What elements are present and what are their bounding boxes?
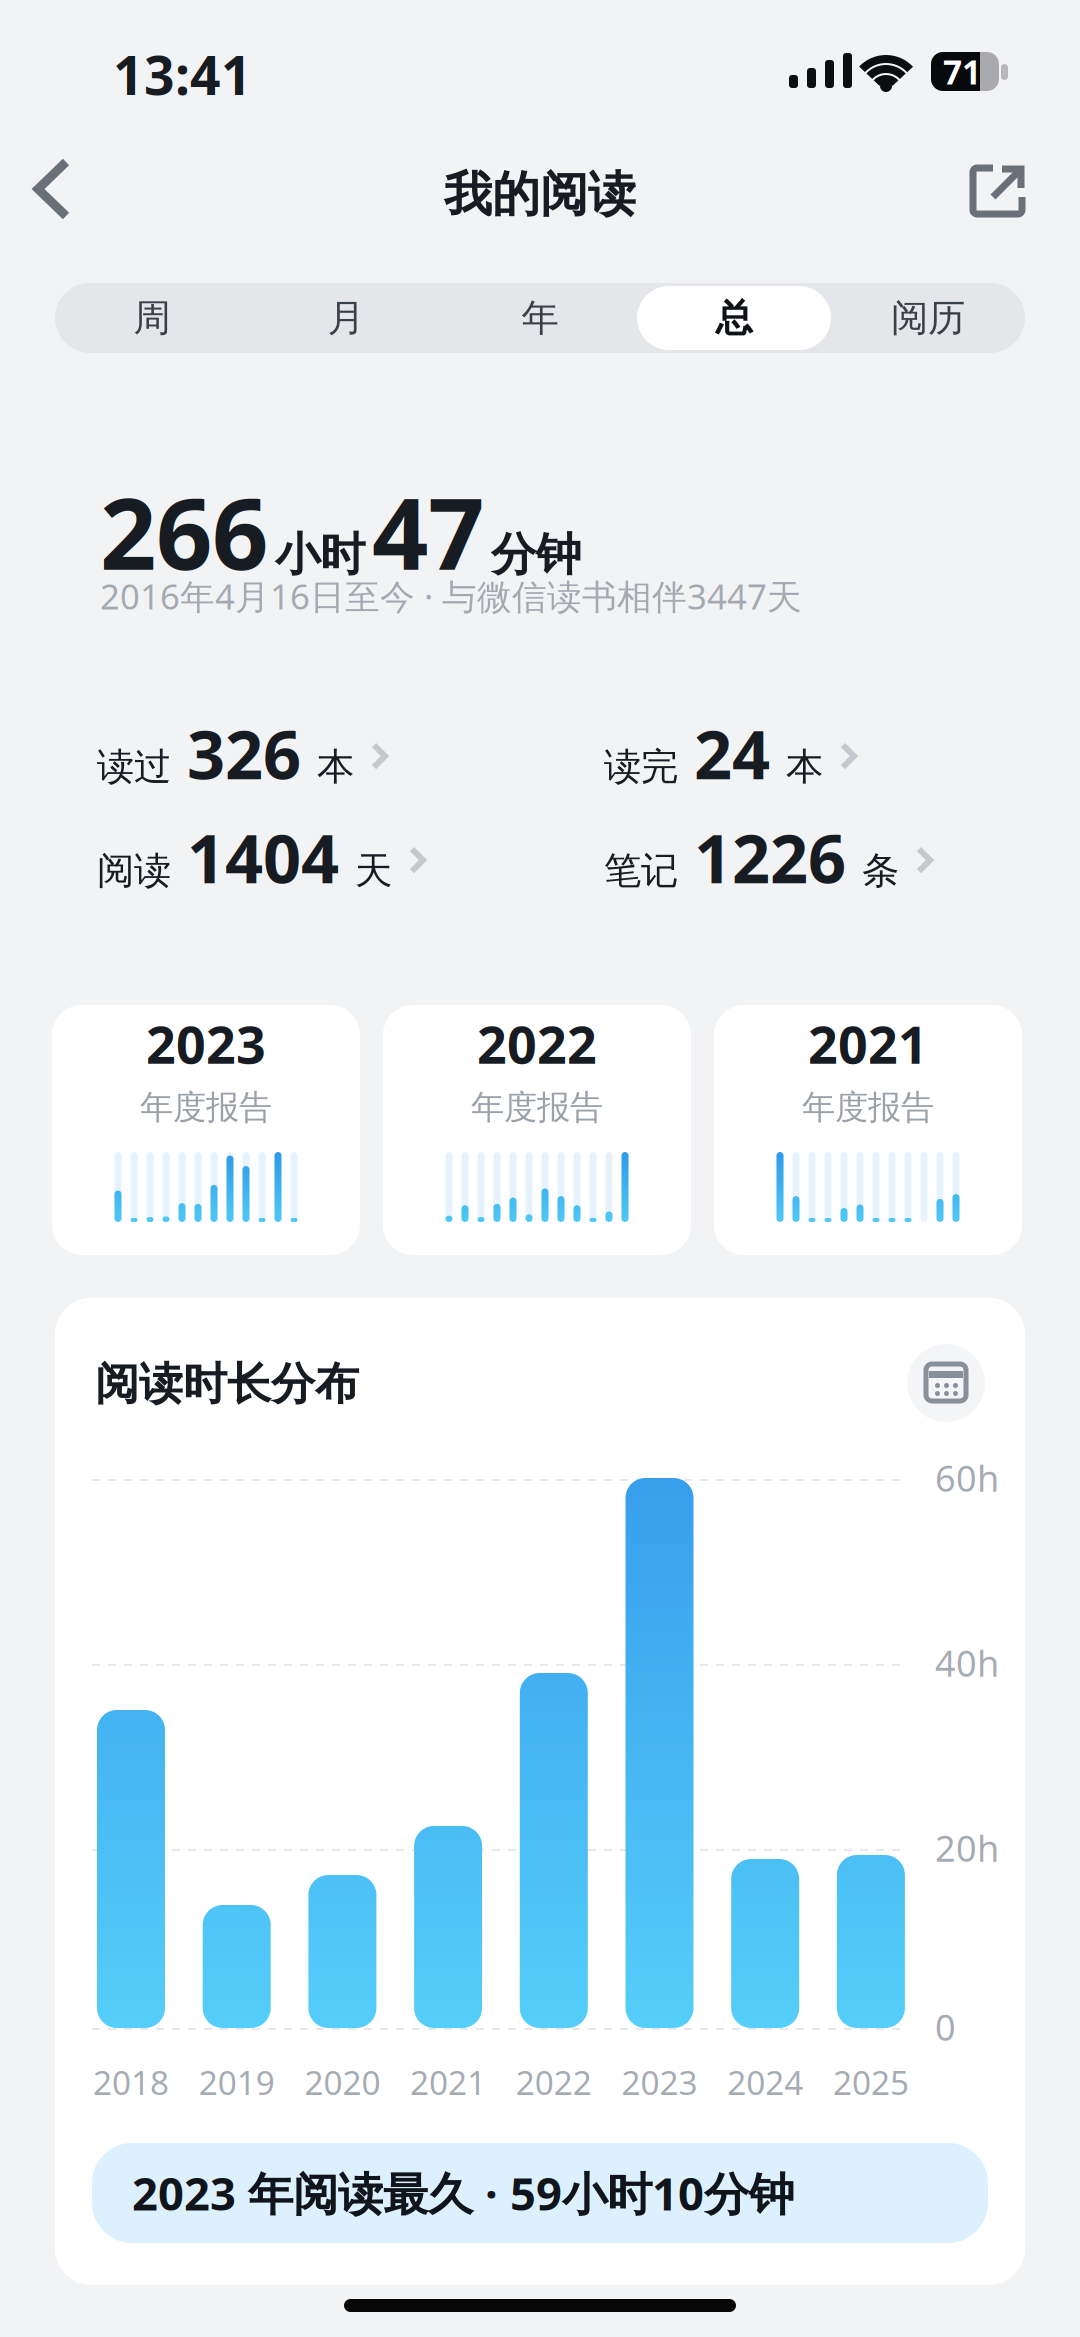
staticText: 2025	[833, 2060, 909, 2104]
staticText: 分钟	[491, 527, 581, 583]
staticText: 266	[100, 466, 268, 597]
staticText: 小时	[275, 527, 365, 583]
button[interactable]: 读过	[97, 709, 390, 797]
staticText: 2022	[516, 2060, 592, 2104]
staticText: 2018	[93, 2060, 169, 2104]
button[interactable]: Share	[958, 150, 1038, 230]
button[interactable]: 阅历	[831, 283, 1025, 353]
staticText: 年度报告	[802, 1087, 934, 1128]
staticText: 本	[317, 744, 354, 790]
button[interactable]: 2023 年阅读最久 · 59小时10分钟	[92, 2143, 988, 2243]
button[interactable]: 总	[637, 283, 831, 353]
staticText: 阅历	[891, 295, 965, 341]
staticText: 2020	[304, 2060, 380, 2104]
staticText: 我的阅读	[444, 165, 636, 224]
staticText: 40h	[935, 1639, 999, 1687]
staticText: 13:41	[113, 39, 252, 110]
staticText: 2021	[410, 2060, 486, 2104]
staticText: 年度报告	[140, 1087, 272, 1128]
staticText: 读完	[604, 744, 678, 790]
staticText: 周	[133, 295, 170, 341]
staticText: 2016年4月16日至今 · 与微信读书相伴3447天	[100, 573, 802, 619]
button[interactable]: 笔记	[604, 813, 935, 901]
button[interactable]: Calendar	[907, 1344, 985, 1422]
staticText: 年	[521, 295, 558, 341]
staticText: 47	[372, 466, 484, 597]
button[interactable]: Back	[8, 144, 98, 234]
staticText: 2023 年阅读最久 · 59小时10分钟	[132, 2163, 794, 2223]
button[interactable]: 阅读	[97, 813, 428, 901]
staticText: 2023	[146, 1009, 266, 1078]
staticText: 71	[943, 49, 981, 94]
button[interactable]: 2022	[383, 1005, 691, 1255]
button[interactable]: 周	[55, 283, 249, 353]
staticText: 总	[715, 295, 752, 341]
staticText: 1404	[187, 813, 339, 901]
staticText: 2023	[621, 2060, 697, 2104]
staticText: 阅读	[97, 848, 171, 894]
staticText: 326	[187, 709, 301, 797]
staticText: 条	[862, 848, 899, 894]
staticText: 0	[935, 2003, 956, 2051]
button[interactable]: 2021	[714, 1005, 1022, 1255]
staticText: 月	[327, 295, 364, 341]
staticText: 本	[786, 744, 823, 790]
button[interactable]: 月	[249, 283, 443, 353]
staticText: 24	[694, 709, 770, 797]
staticText: 20h	[935, 1824, 999, 1872]
button[interactable]: 2023	[52, 1005, 360, 1255]
staticText: 2022	[477, 1009, 597, 1078]
button[interactable]: 读完	[604, 709, 859, 797]
staticText: 1226	[694, 813, 846, 901]
staticText: 笔记	[604, 848, 678, 894]
staticText: 读过	[97, 744, 171, 790]
staticText: 天	[355, 848, 392, 894]
staticText: 2019	[199, 2060, 275, 2104]
staticText: 年度报告	[471, 1087, 603, 1128]
button[interactable]: 年	[443, 283, 637, 353]
staticText: 60h	[935, 1454, 999, 1502]
staticText: 2021	[808, 1009, 928, 1078]
staticText: 2024	[727, 2060, 803, 2104]
staticText: 阅读时长分布	[95, 1357, 359, 1411]
